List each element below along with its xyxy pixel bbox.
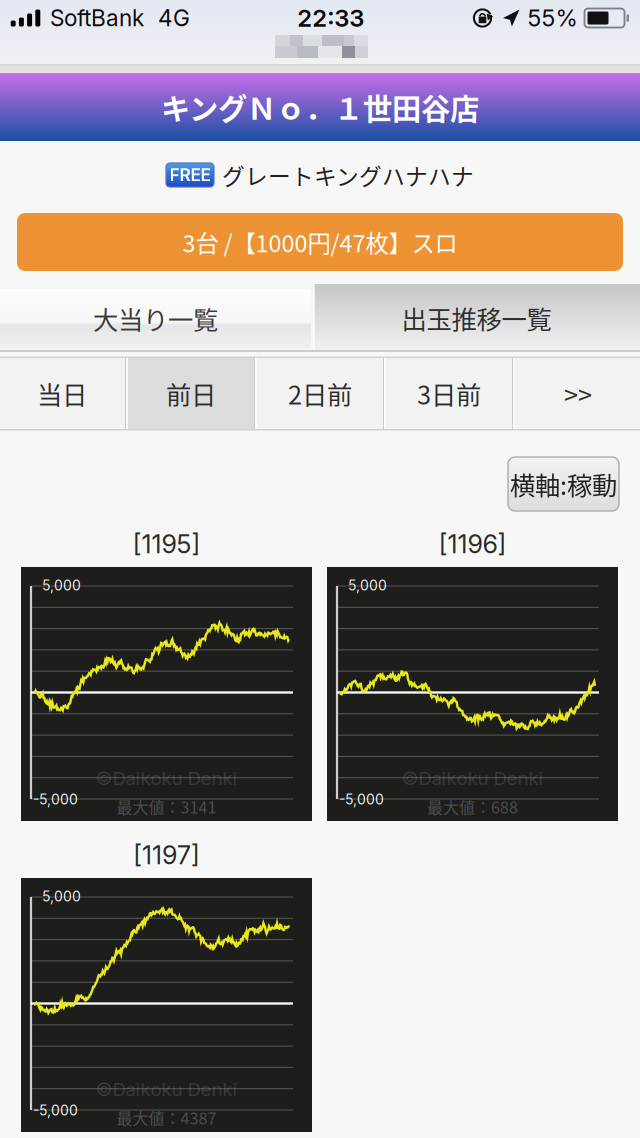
staticText: 5,000 [42, 888, 81, 905]
staticText: 22:33 [297, 3, 364, 32]
button[interactable]: 出玉推移一覧 [313, 284, 640, 352]
button[interactable]: 当日 [0, 358, 125, 429]
staticText: 5,000 [42, 577, 81, 594]
staticText: [1195] [132, 529, 200, 559]
button[interactable]: 2日前 [257, 358, 383, 429]
staticText: -5,000 [339, 791, 384, 808]
button[interactable]: 横軸:稼動 [508, 457, 619, 511]
staticText: 最大値：688 [427, 795, 518, 818]
staticText: 大当り一覧 [93, 300, 218, 337]
staticText: グレートキングハナハナ [222, 159, 474, 191]
staticText: 4G [158, 4, 190, 32]
staticText: ©Daikoku Denki [95, 767, 237, 790]
staticText: FREE [169, 164, 210, 185]
staticText: >> [564, 375, 592, 412]
staticText: 2日前 [288, 375, 352, 412]
staticText: ©Daikoku Denki [95, 1078, 237, 1101]
button[interactable]: 3台 /【1000円/47枚】スロ [17, 213, 623, 271]
staticText: 55% [527, 4, 577, 32]
staticText: キングＮｏ．１世田谷店 [161, 86, 479, 128]
button[interactable]: 前日 [128, 358, 254, 429]
staticText: 最大値：3141 [116, 795, 216, 818]
button[interactable]: >> [515, 358, 640, 429]
staticText: 3日前 [417, 375, 481, 412]
staticText: ©Daikoku Denki [401, 767, 543, 790]
staticText: 5,000 [348, 577, 387, 594]
staticText: 最大値：4387 [116, 1106, 216, 1129]
button[interactable]: 3日前 [386, 358, 512, 429]
staticText: -5,000 [33, 791, 78, 808]
staticText: [1197] [133, 840, 200, 870]
staticText: 横軸:稼動 [510, 466, 617, 502]
staticText: 出玉推移一覧 [401, 300, 551, 336]
staticText: 3台 /【1000円/47枚】スロ [182, 225, 457, 259]
staticText: 前日 [166, 375, 216, 412]
staticText: SoftBank [50, 4, 144, 32]
staticText: -5,000 [33, 1102, 78, 1119]
staticText: 当日 [37, 375, 87, 412]
button[interactable]: 大当り一覧 [0, 289, 311, 348]
staticText: [1196] [438, 529, 506, 559]
